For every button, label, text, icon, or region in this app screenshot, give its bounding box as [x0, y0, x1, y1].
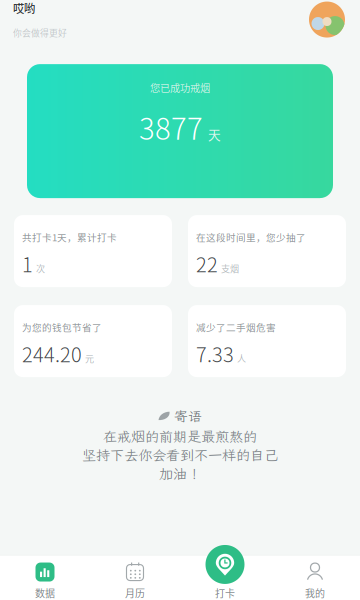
staticText: 寄语 — [174, 407, 202, 425]
staticText: 减少了二手烟危害 — [196, 320, 276, 334]
staticText: 支烟 — [221, 262, 239, 275]
staticText: 打卡 — [215, 586, 235, 600]
staticText: 坚持下去你会看到不一样的自己 — [82, 446, 278, 464]
button[interactable]: 个人资料 — [309, 2, 345, 38]
staticText: 我的 — [305, 586, 325, 600]
staticText: 共打卡1天，累计打卡 — [22, 230, 117, 244]
button[interactable]: 在这段时间里，您少抽了 — [188, 215, 346, 287]
staticText: 在这段时间里，您少抽了 — [196, 230, 306, 244]
staticText: 为您的钱包节省了 — [22, 320, 102, 334]
staticText: 数据 — [35, 586, 55, 600]
staticText: 加油！ — [159, 464, 201, 483]
staticText: 天 — [208, 125, 221, 143]
button[interactable]: 打卡 — [205, 545, 244, 584]
button[interactable]: 减少了二手烟危害 — [188, 305, 346, 377]
staticText: 22 — [196, 249, 218, 278]
button[interactable]: 数据 — [0, 556, 90, 600]
staticText: 在戒烟的前期是最煎熬的 — [103, 427, 257, 446]
staticText: 人 — [237, 352, 246, 365]
button[interactable]: 打卡 — [180, 556, 270, 600]
button[interactable]: 月历 — [90, 556, 180, 600]
staticText: 1 — [22, 249, 33, 278]
staticText: 您已成功戒烟 — [150, 80, 210, 95]
button[interactable]: 我的 — [270, 556, 360, 600]
button[interactable]: 共打卡1天，累计打卡 — [14, 215, 172, 287]
staticText: 月历 — [125, 586, 145, 600]
staticText: 244.20 — [22, 339, 82, 368]
staticText: 你会做得更好 — [13, 26, 67, 39]
button[interactable]: 为您的钱包节省了 — [14, 305, 172, 377]
staticText: 元 — [85, 352, 94, 365]
staticText: 3877 — [139, 106, 203, 148]
staticText: 7.33 — [196, 339, 234, 368]
staticText: 次 — [36, 262, 45, 275]
staticText: 哎哟 — [13, 0, 35, 16]
